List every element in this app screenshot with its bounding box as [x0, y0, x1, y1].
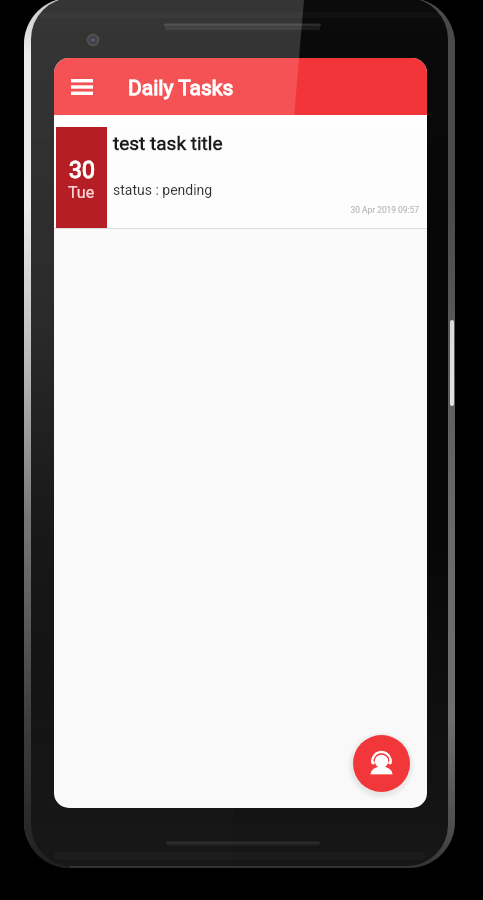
staticText: 30 — [69, 157, 95, 184]
staticText: status : pending — [113, 182, 213, 198]
staticText: 30 Apr 2019 09:57 — [113, 205, 419, 215]
button[interactable]: Open navigation menu — [62, 67, 102, 107]
button[interactable]: Contact support — [353, 735, 410, 792]
staticText: Daily Tasks — [128, 76, 234, 101]
staticText: Tue — [68, 183, 95, 202]
button[interactable]: 30 — [54, 127, 427, 229]
staticText: test task title — [113, 132, 223, 154]
